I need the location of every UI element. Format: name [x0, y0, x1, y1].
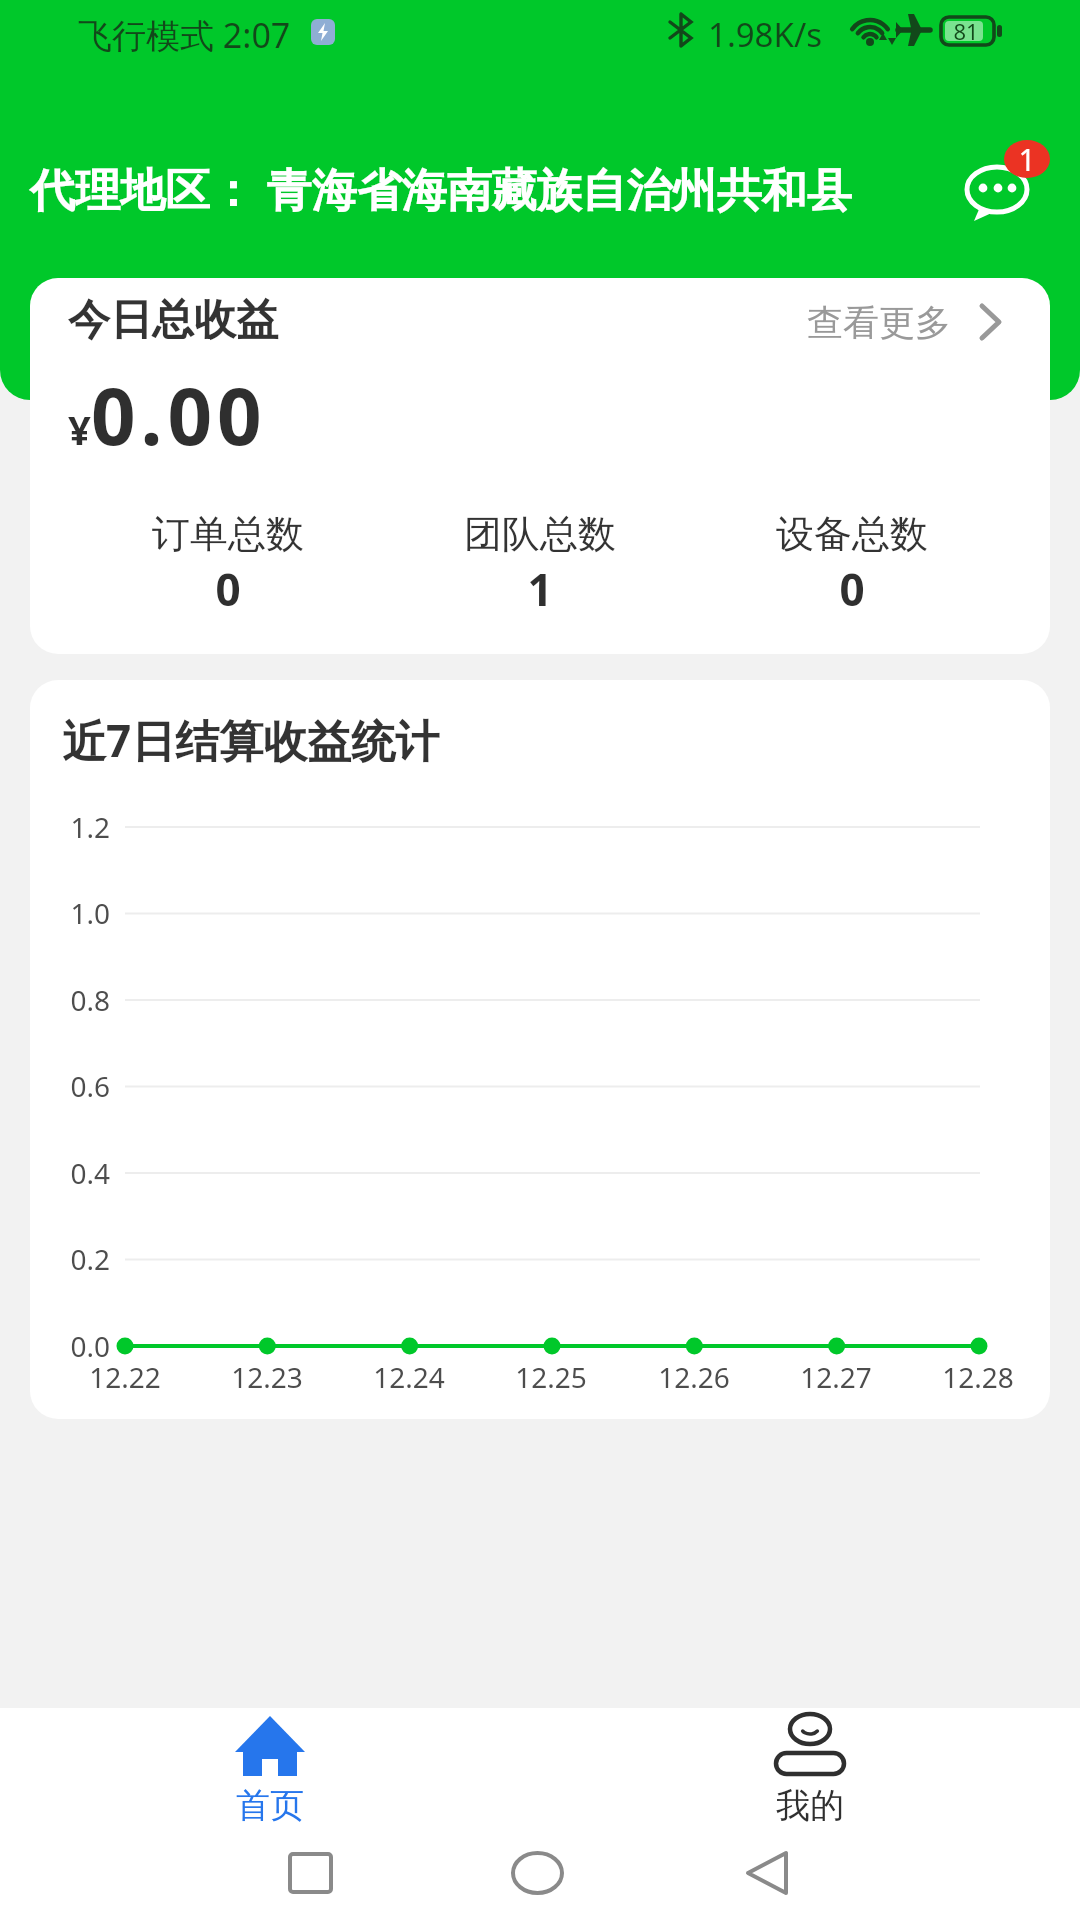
staticText: 查看更多 — [807, 300, 951, 344]
staticText: 12.26 — [634, 1358, 754, 1396]
staticText: 0.2 — [30, 1240, 110, 1278]
staticText: 设备总数 — [702, 510, 1002, 558]
staticText: 0.4 — [30, 1154, 110, 1192]
staticText: 12.24 — [349, 1358, 469, 1396]
staticText: 12.25 — [491, 1358, 611, 1396]
button[interactable] — [270, 1842, 350, 1914]
staticText: 12.27 — [776, 1358, 896, 1396]
staticText: 订单总数 — [78, 510, 378, 558]
staticText: 1.0 — [30, 894, 110, 932]
staticText: 飞行模式 2:07 — [78, 12, 291, 58]
button[interactable]: 首页 — [0, 1708, 540, 1836]
staticText: 0.6 — [30, 1067, 110, 1105]
staticText: 1 — [1004, 139, 1050, 180]
staticText: 0.8 — [30, 981, 110, 1019]
staticText: ¥0.00 — [68, 362, 267, 468]
staticText: 12.22 — [65, 1358, 185, 1396]
staticText: 我的 — [750, 1784, 870, 1827]
staticText: 0.0 — [30, 1327, 110, 1365]
staticText: 0 — [78, 559, 378, 619]
staticText: 12.23 — [207, 1358, 327, 1396]
staticText: 1.98K/s — [708, 12, 822, 57]
staticText: 首页 — [210, 1784, 330, 1827]
staticText: 今日总收益 — [68, 294, 278, 347]
button[interactable] — [730, 1842, 810, 1914]
staticText: 近7日结算收益统计 — [62, 710, 440, 770]
staticText: 0 — [702, 559, 1002, 619]
staticText: 1.2 — [30, 808, 110, 846]
button[interactable]: 查看更多 — [807, 300, 1005, 344]
button[interactable]: 1 — [940, 125, 1065, 230]
staticText: 1 — [390, 559, 690, 619]
staticText: 81 — [945, 16, 987, 46]
button[interactable] — [500, 1842, 580, 1914]
staticText: 团队总数 — [390, 510, 690, 558]
staticText: 12.28 — [918, 1358, 1038, 1396]
staticText: 代理地区： 青海省海南藏族自治州共和县 — [30, 158, 852, 219]
button[interactable]: 我的 — [540, 1708, 1080, 1836]
